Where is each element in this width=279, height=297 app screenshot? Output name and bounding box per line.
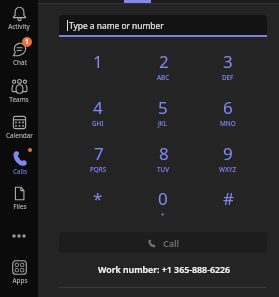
button[interactable]: 8 (141, 142, 185, 182)
button[interactable]: More options (0, 228, 38, 244)
staticText: * (93, 187, 103, 210)
staticText: 1 (93, 50, 103, 73)
button[interactable]: 2 (141, 50, 185, 90)
button[interactable]: 3 (206, 50, 250, 90)
button[interactable]: Activity (0, 4, 38, 34)
staticText: Apps (12, 276, 28, 285)
staticText: WXYZ (219, 165, 237, 174)
button[interactable]: 6 (206, 96, 250, 136)
staticText: 1 (25, 37, 30, 47)
button[interactable]: 1 (0, 40, 38, 70)
staticText: Calls (13, 167, 27, 176)
staticText: Activity (8, 22, 30, 31)
button[interactable]: 5 (141, 96, 185, 136)
staticText: 8 (159, 142, 169, 165)
button[interactable]: 9 (206, 142, 250, 182)
staticText: 5 (158, 96, 168, 119)
staticText: ABC (157, 73, 170, 82)
button[interactable]: 0 (141, 187, 185, 227)
staticText: # (223, 187, 234, 210)
button[interactable]: Calls (0, 149, 38, 179)
staticText: + (161, 210, 165, 219)
button[interactable]: 1 (76, 50, 120, 90)
button[interactable]: * (76, 187, 120, 227)
staticText: JKL (158, 119, 168, 128)
staticText: 9 (223, 142, 233, 165)
staticText: TUV (157, 165, 170, 174)
button[interactable]: Type a name or number (59, 15, 267, 35)
staticText: Type a name or number (69, 20, 164, 31)
staticText: Work number: +1 365-888-6226 (98, 264, 231, 276)
button[interactable]: 7 (76, 142, 120, 182)
staticText: PQRS (90, 165, 107, 174)
button[interactable]: Call (59, 232, 267, 253)
button[interactable]: Apps (0, 258, 38, 288)
staticText: 0 (158, 187, 168, 210)
staticText: GHI (92, 119, 104, 128)
button[interactable]: Teams (0, 77, 38, 107)
staticText: Teams (9, 95, 29, 104)
staticText: Files (13, 202, 27, 211)
staticText: 6 (223, 96, 233, 119)
staticText: DEF (222, 73, 234, 82)
button[interactable]: # (206, 187, 250, 227)
staticText: Call (163, 237, 180, 249)
staticText: 4 (93, 96, 103, 119)
staticText: Calendar (6, 131, 33, 140)
button[interactable]: Files (0, 184, 38, 214)
staticText: 2 (159, 50, 169, 73)
staticText: 7 (94, 142, 104, 165)
staticText: Chat (13, 58, 27, 67)
staticText: MNO (220, 119, 236, 128)
staticText: 3 (223, 50, 233, 73)
button[interactable]: 4 (76, 96, 120, 136)
button[interactable]: Calendar (0, 113, 38, 143)
